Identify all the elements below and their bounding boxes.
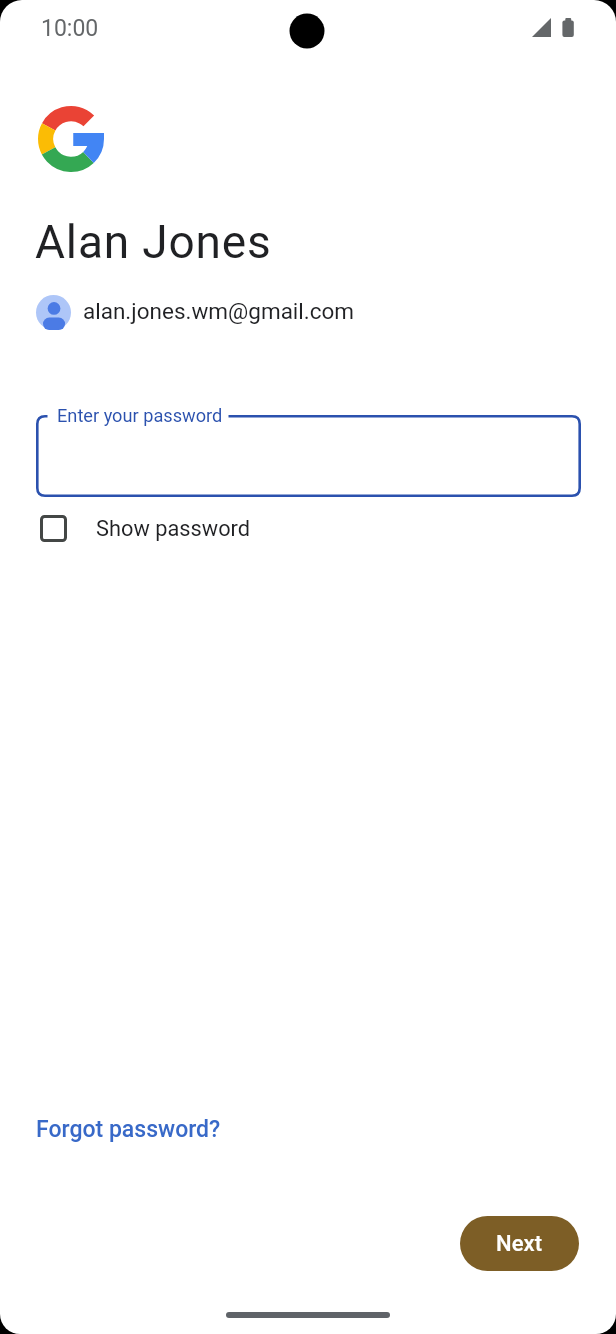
button[interactable]: Forgot password? xyxy=(21,1106,236,1153)
staticText: Show password xyxy=(96,516,251,542)
button[interactable]: Show password xyxy=(22,505,269,552)
staticText: Next xyxy=(496,1231,543,1257)
staticText: alan.jones.wm@gmail.com xyxy=(83,298,355,324)
button[interactable]: Next xyxy=(460,1216,579,1271)
staticText: Alan Jones xyxy=(35,215,272,269)
other: Account avatar xyxy=(36,295,71,330)
other: Google xyxy=(38,106,104,172)
button[interactable]: Enter your password xyxy=(36,415,581,497)
staticText: Forgot password? xyxy=(36,1116,221,1143)
staticText: Enter your password xyxy=(57,405,223,426)
staticText: 10:00 xyxy=(41,15,99,42)
